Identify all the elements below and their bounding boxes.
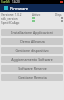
staticText: Software Reserve <box>18 66 47 71</box>
staticText: Attivo <box>32 13 41 17</box>
button[interactable]: Aggiornamento Software <box>1 56 63 63</box>
staticText: 14:20 <box>12 0 20 4</box>
staticText: Gestione Remota <box>18 75 47 80</box>
staticText: sdk_version <box>1 17 18 21</box>
staticText: Disp. <box>55 13 63 17</box>
staticText: Demo Alleanza <box>20 39 45 44</box>
staticText: Versione: 1.0.2 <box>1 13 22 17</box>
button[interactable]: Demo Alleanza <box>1 38 63 45</box>
staticText: Installazione Applicazioni <box>11 30 53 35</box>
staticText: Aggiornamento Software <box>11 57 53 62</box>
staticText: SpecifiCaApp <box>1 21 20 25</box>
staticText: SunMi <box>1 0 10 4</box>
staticText: Gestione dispositivo <box>15 48 49 53</box>
button[interactable]: Installazione Applicazioni <box>1 29 63 36</box>
button[interactable]: Gestione dispositivo <box>1 47 63 54</box>
button[interactable]: Gestione Remota <box>1 74 63 81</box>
staticText: Firmware <box>10 6 29 11</box>
button[interactable]: Software Reserve <box>1 65 63 72</box>
